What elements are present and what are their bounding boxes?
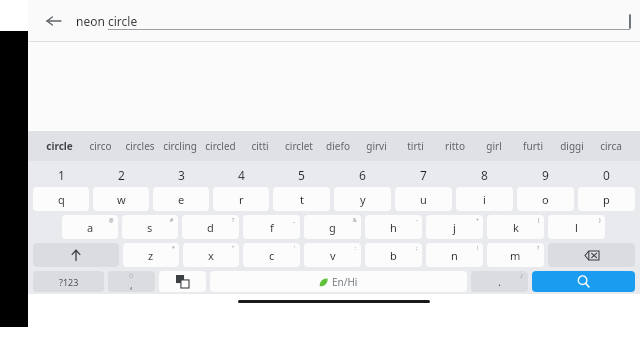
staticText: circlet bbox=[285, 139, 313, 153]
button[interactable]: Period bbox=[471, 271, 528, 292]
button[interactable]: circles bbox=[120, 131, 160, 161]
button[interactable]: Back bbox=[38, 5, 70, 37]
button[interactable]: 6 bbox=[332, 163, 393, 186]
staticText: diefo bbox=[326, 139, 350, 153]
button[interactable]: furti bbox=[513, 131, 552, 161]
button[interactable]: z bbox=[123, 243, 179, 267]
staticText: b bbox=[390, 248, 397, 263]
staticText: 6 bbox=[359, 167, 366, 183]
button[interactable]: n bbox=[426, 243, 483, 267]
button[interactable]: ?123 bbox=[33, 271, 104, 292]
button[interactable]: Backspace bbox=[548, 243, 635, 267]
button[interactable]: t bbox=[273, 187, 330, 211]
staticText: o bbox=[542, 192, 549, 207]
button[interactable]: 2 bbox=[91, 163, 151, 186]
button[interactable]: circa bbox=[591, 131, 630, 161]
staticText: g bbox=[329, 220, 336, 235]
staticText: . bbox=[498, 274, 501, 289]
staticText: En/Hi bbox=[332, 275, 358, 289]
staticText: 9 bbox=[542, 167, 549, 183]
staticText: n bbox=[451, 248, 458, 263]
button[interactable]: h bbox=[365, 215, 422, 239]
staticText: ) bbox=[599, 217, 601, 224]
button[interactable]: o bbox=[517, 187, 574, 211]
staticText: # bbox=[170, 217, 174, 224]
button[interactable]: tirti bbox=[396, 131, 435, 161]
staticText: ? bbox=[537, 245, 540, 252]
button[interactable]: girl bbox=[474, 131, 513, 161]
button[interactable]: y bbox=[334, 187, 391, 211]
button[interactable]: e bbox=[153, 187, 209, 211]
staticText: neon bbox=[76, 13, 108, 29]
button[interactable]: 1 bbox=[31, 163, 91, 186]
staticText: + bbox=[476, 217, 479, 224]
staticText: f bbox=[270, 220, 274, 235]
button[interactable]: l bbox=[548, 215, 605, 239]
staticText: " bbox=[232, 245, 235, 252]
button[interactable]: a bbox=[62, 215, 118, 239]
button[interactable]: u bbox=[395, 187, 452, 211]
button[interactable]: Comma bbox=[108, 271, 155, 292]
staticText: k bbox=[513, 220, 519, 235]
staticText: 0 bbox=[603, 167, 610, 183]
staticText: l bbox=[575, 220, 578, 235]
button[interactable]: Shift bbox=[33, 243, 119, 267]
button[interactable]: q bbox=[33, 187, 89, 211]
staticText: circled bbox=[205, 139, 236, 153]
button[interactable]: i bbox=[456, 187, 513, 211]
button[interactable]: diggi bbox=[552, 131, 591, 161]
button[interactable]: 8 bbox=[454, 163, 515, 186]
button[interactable]: circo bbox=[80, 131, 120, 161]
staticText: girvi bbox=[366, 139, 387, 153]
staticText: 7 bbox=[420, 167, 427, 183]
button[interactable]: j bbox=[426, 215, 483, 239]
button[interactable]: Search bbox=[532, 271, 635, 292]
staticText: _ bbox=[293, 217, 296, 224]
button[interactable]: p bbox=[578, 187, 635, 211]
staticText: circle bbox=[46, 139, 73, 153]
staticText: i bbox=[483, 192, 486, 207]
button[interactable]: 4 bbox=[211, 163, 271, 186]
staticText: ' bbox=[294, 245, 296, 252]
staticText: t bbox=[300, 192, 304, 207]
button[interactable]: 0 bbox=[576, 163, 637, 186]
staticText: m bbox=[510, 248, 521, 263]
button[interactable]: c bbox=[243, 243, 300, 267]
staticText: s bbox=[147, 220, 153, 235]
staticText: 1 bbox=[58, 167, 65, 183]
button[interactable]: diefo bbox=[318, 131, 357, 161]
staticText: @ bbox=[109, 217, 114, 224]
button[interactable]: circled bbox=[200, 131, 240, 161]
button[interactable]: Space bbox=[210, 271, 467, 292]
button[interactable]: Translate bbox=[159, 271, 206, 292]
staticText: 8 bbox=[481, 167, 488, 183]
button[interactable]: 9 bbox=[515, 163, 576, 186]
button[interactable]: circlet bbox=[279, 131, 318, 161]
button[interactable]: f bbox=[243, 215, 300, 239]
staticText: u bbox=[420, 192, 427, 207]
button[interactable]: k bbox=[487, 215, 544, 239]
button[interactable]: v bbox=[304, 243, 361, 267]
button[interactable]: citti bbox=[240, 131, 279, 161]
staticText: 3 bbox=[178, 167, 185, 183]
button[interactable]: ritto bbox=[435, 131, 474, 161]
button[interactable]: 7 bbox=[393, 163, 454, 186]
button[interactable]: d bbox=[182, 215, 239, 239]
button[interactable]: m bbox=[487, 243, 544, 267]
staticText: - bbox=[416, 217, 418, 224]
staticText: circles bbox=[125, 139, 155, 153]
staticText: c bbox=[269, 248, 275, 263]
button[interactable]: b bbox=[365, 243, 422, 267]
button[interactable]: circling bbox=[160, 131, 200, 161]
button[interactable]: 5 bbox=[271, 163, 332, 186]
button[interactable]: girvi bbox=[357, 131, 396, 161]
staticText: x bbox=[208, 248, 214, 263]
button[interactable]: circle bbox=[38, 131, 80, 161]
button[interactable]: g bbox=[304, 215, 361, 239]
staticText: , bbox=[130, 278, 133, 292]
button[interactable]: 3 bbox=[151, 163, 211, 186]
button[interactable]: x bbox=[183, 243, 239, 267]
button[interactable]: w bbox=[93, 187, 149, 211]
button[interactable]: r bbox=[213, 187, 269, 211]
button[interactable]: s bbox=[122, 215, 178, 239]
